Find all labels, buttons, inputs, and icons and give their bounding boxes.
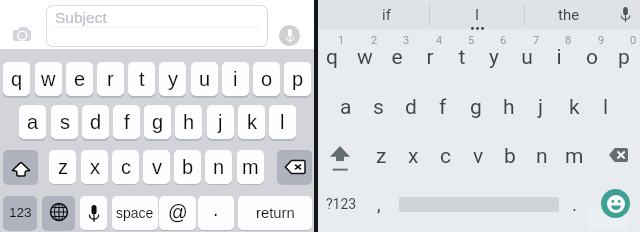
button[interactable]: the [531, 0, 607, 29]
staticText: o [261, 68, 273, 90]
button[interactable]: m [558, 137, 590, 175]
button[interactable]: i [222, 62, 249, 96]
button[interactable]: Camera [13, 27, 31, 41]
button[interactable]: b [494, 137, 526, 175]
button[interactable]: Shift [322, 137, 358, 177]
staticText: s [373, 95, 384, 120]
button[interactable]: 2 [349, 31, 381, 79]
button[interactable]: I [431, 0, 524, 29]
staticText: y [478, 45, 510, 70]
staticText: h [183, 111, 195, 133]
button[interactable]: 123 [3, 196, 37, 230]
button[interactable]: k [558, 88, 590, 126]
button[interactable]: 4 [414, 31, 446, 79]
staticText: n [213, 156, 225, 178]
button[interactable]: , [365, 184, 393, 224]
button[interactable]: b [174, 150, 201, 184]
staticText: d [405, 95, 417, 120]
button[interactable]: y [159, 62, 186, 96]
staticText: j [538, 95, 544, 120]
button[interactable]: o [253, 62, 280, 96]
button[interactable]: n [526, 137, 558, 175]
button[interactable]: g [460, 88, 492, 126]
button[interactable]: p [284, 62, 311, 96]
button[interactable]: h [175, 105, 202, 139]
staticText: the [558, 6, 580, 24]
button[interactable]: c [112, 150, 139, 184]
staticText: i [233, 68, 238, 90]
button[interactable]: w [35, 62, 62, 96]
staticText: Subject [55, 9, 107, 26]
button[interactable]: s [362, 88, 394, 126]
button[interactable]: . [198, 196, 234, 230]
button[interactable]: v [143, 150, 170, 184]
staticText: v [152, 156, 162, 178]
button[interactable]: s [51, 105, 78, 139]
button[interactable]: f [113, 105, 140, 139]
button[interactable]: r [97, 62, 124, 96]
button[interactable]: n [205, 150, 232, 184]
staticText: m [242, 156, 259, 178]
button[interactable]: 3 [381, 31, 413, 79]
button[interactable]: Voice input [279, 25, 300, 46]
button[interactable]: z [365, 137, 397, 175]
button[interactable]: Voice input [614, 2, 637, 27]
button[interactable]: j [525, 88, 557, 126]
button[interactable]: 8 [543, 31, 575, 79]
button[interactable]: e [66, 62, 93, 96]
staticText: c [121, 156, 131, 178]
button[interactable]: @ [159, 196, 196, 230]
button[interactable]: d [82, 105, 109, 139]
staticText: p [292, 68, 304, 90]
button[interactable]: . [561, 184, 588, 224]
staticText: 123 [9, 205, 32, 220]
button[interactable]: a [330, 88, 362, 126]
button[interactable]: d [395, 88, 427, 126]
staticText: u [199, 68, 211, 90]
button[interactable]: m [237, 150, 264, 184]
button[interactable]: l [269, 105, 296, 139]
button[interactable]: f [427, 88, 459, 126]
button[interactable]: x [81, 150, 108, 184]
button[interactable]: u [191, 62, 218, 96]
button[interactable]: 6 [478, 31, 510, 79]
button[interactable]: 1 [316, 31, 348, 79]
button[interactable]: t [128, 62, 155, 96]
button[interactable]: j [207, 105, 234, 139]
button[interactable]: c [429, 137, 461, 175]
button[interactable]: return [238, 196, 312, 230]
staticText: f [439, 95, 447, 120]
button[interactable]: h [493, 88, 525, 126]
button[interactable]: v [462, 137, 494, 175]
button[interactable]: Dictate [80, 196, 107, 230]
button[interactable]: 9 [576, 31, 608, 79]
button[interactable]: space [112, 196, 158, 230]
button[interactable]: Subject [46, 5, 268, 47]
button[interactable]: 0 [608, 31, 640, 79]
button[interactable]: if [348, 0, 424, 29]
staticText: ?123 [326, 196, 357, 212]
staticText: q [316, 45, 348, 70]
button[interactable]: Backspace [602, 136, 634, 174]
button[interactable]: g [144, 105, 171, 139]
button[interactable]: x [397, 137, 429, 175]
staticText: b [182, 156, 194, 178]
button[interactable]: k [238, 105, 265, 139]
button[interactable]: q [3, 62, 30, 96]
staticText: y [168, 68, 178, 90]
button[interactable]: Backspace [277, 150, 312, 184]
button[interactable]: l [590, 88, 622, 126]
button[interactable]: a [19, 105, 46, 139]
staticText: n [536, 144, 548, 169]
staticText: x [408, 144, 419, 169]
staticText: z [58, 156, 68, 178]
button[interactable]: Change keyboard [42, 196, 75, 230]
button[interactable]: ?123 [320, 184, 362, 224]
button[interactable]: 7 [511, 31, 543, 79]
button[interactable]: Shift [3, 150, 38, 184]
button[interactable]: z [49, 150, 76, 184]
staticText: z [376, 144, 387, 169]
button[interactable]: Emoji [601, 189, 630, 218]
button[interactable]: 5 [446, 31, 478, 79]
